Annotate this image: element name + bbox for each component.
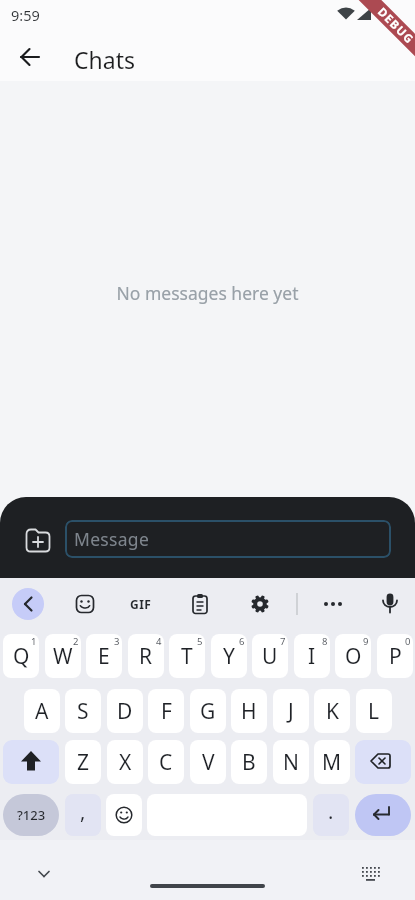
staticText: DEBUG [374, 4, 415, 48]
button[interactable]: R [128, 634, 164, 678]
staticText: B [242, 748, 256, 777]
staticText: GIF [130, 596, 152, 612]
staticText: No messages here yet [0, 281, 415, 305]
button[interactable]: E [86, 634, 122, 678]
staticText: I [308, 642, 316, 671]
staticText: W [53, 642, 73, 671]
button[interactable] [69, 588, 101, 620]
button[interactable]: L [356, 689, 392, 733]
staticText: Chats [74, 44, 135, 75]
staticText: F [161, 697, 172, 726]
staticText: L [368, 697, 380, 726]
button[interactable]: B [231, 740, 267, 784]
button[interactable]: ?123 [3, 794, 59, 836]
button[interactable] [374, 588, 406, 620]
button[interactable]: P [377, 634, 413, 678]
staticText: 9:59 [11, 5, 40, 25]
button[interactable]: U [252, 634, 288, 678]
button[interactable]: K [314, 689, 350, 733]
button[interactable]: D [107, 689, 143, 733]
staticText: . [328, 798, 334, 825]
button[interactable] [317, 588, 349, 620]
staticText: 8 [322, 635, 328, 648]
button[interactable]: H [231, 689, 267, 733]
button[interactable] [355, 740, 411, 784]
button[interactable] [184, 588, 216, 620]
staticText: A [35, 697, 49, 726]
staticText: 0 [405, 635, 411, 648]
button[interactable]: V [190, 740, 226, 784]
button[interactable] [3, 740, 59, 784]
button[interactable] [20, 521, 56, 557]
staticText: S [77, 697, 89, 726]
staticText: M [322, 748, 342, 777]
button[interactable]: M [314, 740, 350, 784]
button[interactable]: Z [65, 740, 101, 784]
staticText: , [80, 798, 86, 825]
staticText: ?123 [17, 806, 46, 824]
button[interactable] [12, 39, 48, 75]
button[interactable]: C [148, 740, 184, 784]
staticText: P [389, 642, 402, 671]
button[interactable]: G [190, 689, 226, 733]
staticText: 3 [114, 635, 120, 648]
button[interactable] [12, 588, 44, 620]
staticText: 6 [239, 635, 245, 648]
staticText: 7 [280, 635, 286, 648]
button[interactable]: X [107, 740, 143, 784]
button[interactable]: . [313, 794, 349, 836]
staticText: Message [74, 527, 150, 551]
staticText: D [117, 697, 133, 726]
staticText: G [200, 697, 216, 726]
staticText: K [326, 697, 339, 726]
button[interactable] [244, 588, 276, 620]
staticText: 4 [156, 635, 162, 648]
staticText: E [98, 642, 110, 671]
button[interactable]: O [335, 634, 371, 678]
button[interactable]: T [169, 634, 205, 678]
staticText: 9 [363, 635, 369, 648]
button[interactable]: GIF [125, 588, 157, 620]
button[interactable]: Q [3, 634, 39, 678]
staticText: 2 [73, 635, 79, 648]
button[interactable]: I [294, 634, 330, 678]
staticText: 1 [31, 635, 37, 648]
staticText: Z [77, 748, 90, 777]
button[interactable] [106, 794, 142, 836]
staticText: J [288, 697, 294, 726]
staticText: V [202, 748, 215, 777]
staticText: Y [223, 642, 235, 671]
staticText: Q [13, 642, 30, 671]
button[interactable] [354, 858, 386, 890]
button[interactable]: A [24, 689, 60, 733]
staticText: H [241, 697, 257, 726]
staticText: X [119, 748, 132, 777]
button[interactable]: J [273, 689, 309, 733]
button[interactable] [355, 794, 411, 836]
button[interactable]: Message [65, 520, 391, 558]
staticText: C [159, 748, 173, 777]
staticText: U [262, 642, 278, 671]
button[interactable] [28, 858, 60, 890]
staticText: T [181, 642, 193, 671]
button[interactable]: , [65, 794, 101, 836]
button[interactable]: F [148, 689, 184, 733]
button[interactable]: Y [211, 634, 247, 678]
button[interactable]: N [273, 740, 309, 784]
staticText: R [139, 642, 153, 671]
staticText: O [345, 642, 362, 671]
staticText: 5 [197, 635, 203, 648]
button[interactable]: W [45, 634, 81, 678]
button[interactable]: S [65, 689, 101, 733]
staticText: N [283, 748, 299, 777]
